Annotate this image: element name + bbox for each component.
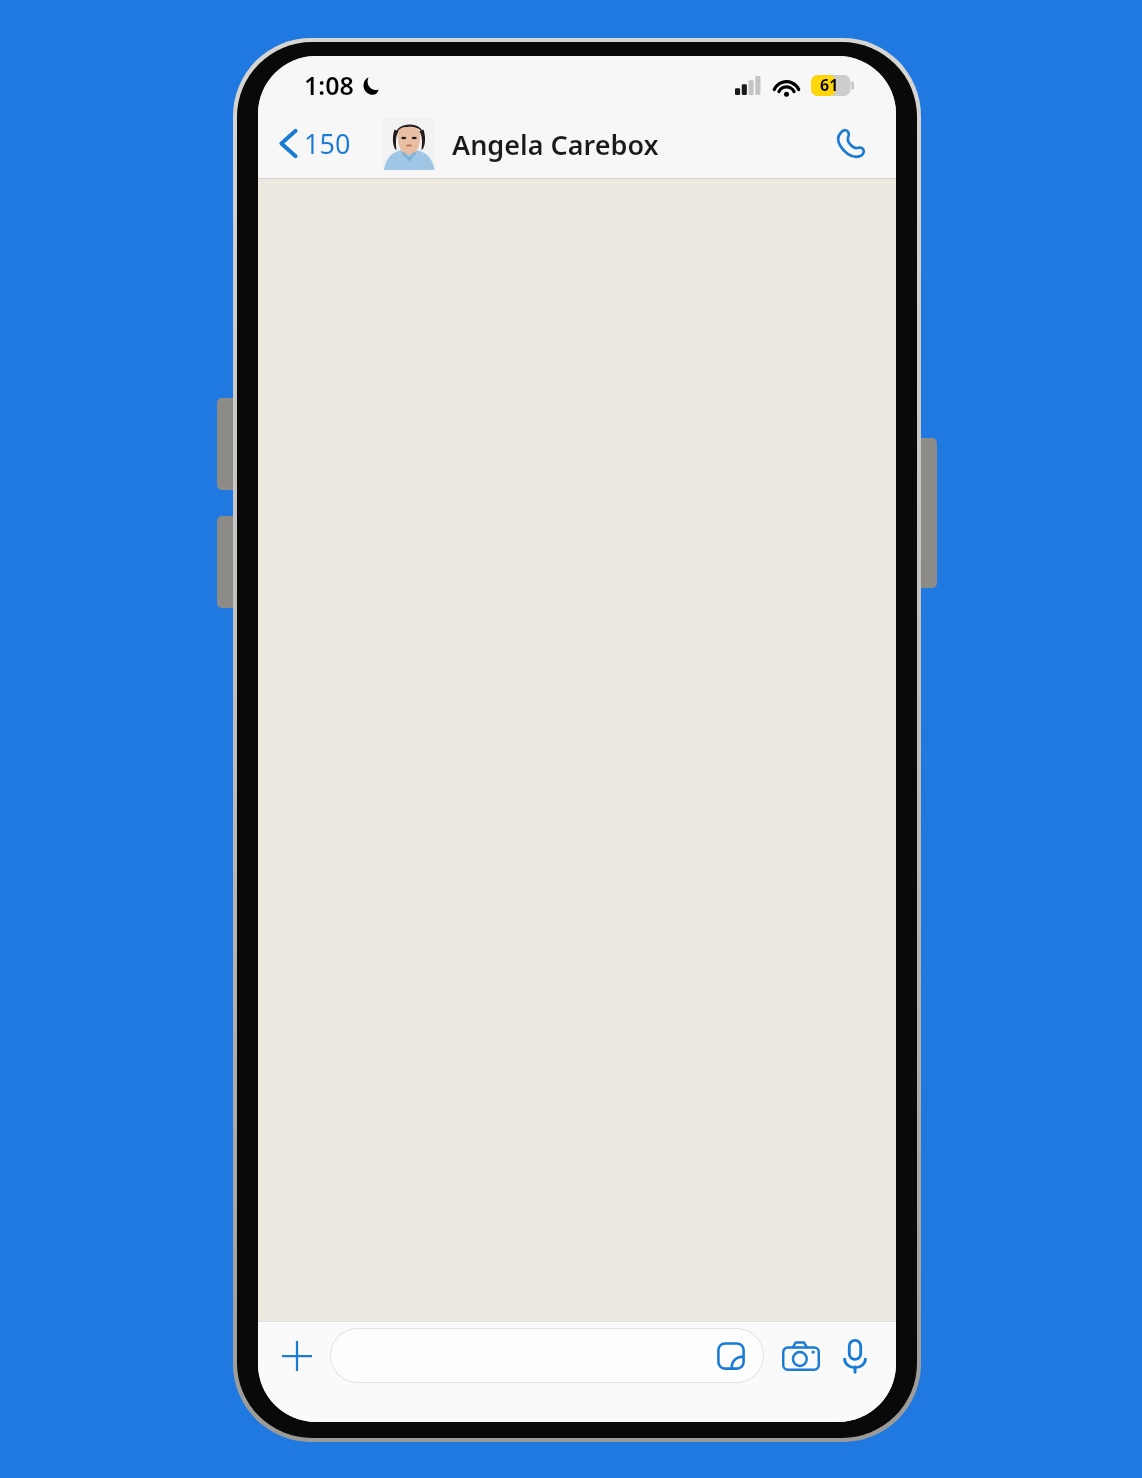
button[interactable]: Add attachment — [272, 1331, 322, 1381]
staticText: 61 — [820, 74, 839, 96]
button[interactable]: Voice message — [830, 1331, 880, 1381]
button[interactable]: Call — [826, 120, 874, 168]
button[interactable]: Camera — [776, 1331, 826, 1381]
button[interactable]: Stickers — [330, 1328, 764, 1383]
staticText: 150 — [304, 125, 351, 162]
staticText: 1:08 — [304, 68, 354, 102]
button[interactable]: 150 — [272, 119, 359, 168]
staticText: Angela Carebox — [452, 126, 659, 163]
button[interactable]: Stickers — [712, 1337, 750, 1375]
button[interactable]: Angela Carebox — [383, 118, 659, 170]
